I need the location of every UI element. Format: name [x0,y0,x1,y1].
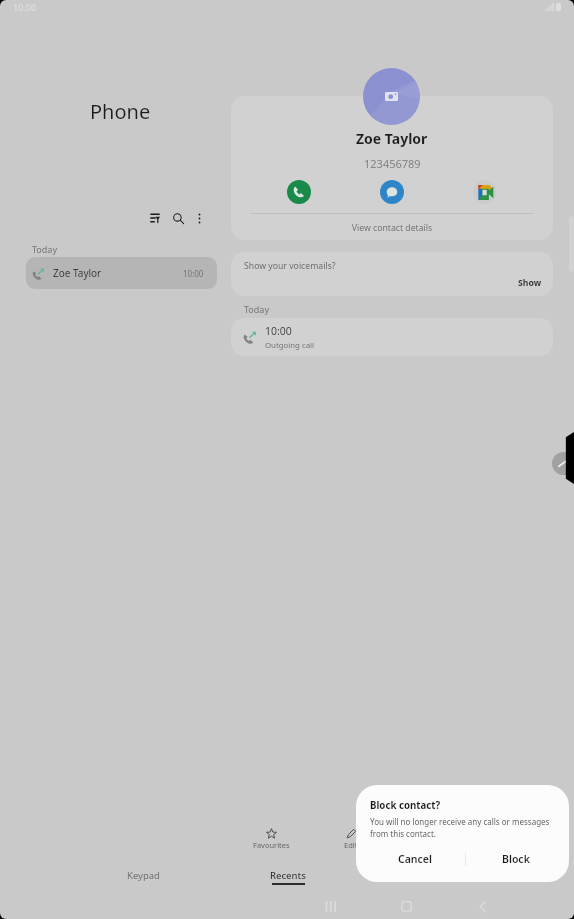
button[interactable]: Keypad [110,862,177,888]
staticText: You will no longer receive any calls or … [370,816,555,840]
button[interactable]: Search [167,207,189,229]
staticText: Zoe Taylor [356,129,428,148]
button[interactable]: Block [466,844,566,874]
button[interactable]: Video call [473,180,497,204]
staticText: Show your voicemails? [244,260,336,272]
button[interactable]: Favourites [231,822,311,856]
button[interactable]: Sort [144,207,166,229]
staticText: Favourites [253,840,290,850]
button[interactable]: Cancel [365,844,465,874]
button[interactable]: 10:00 [231,318,553,356]
button[interactable]: Edge panel [562,432,574,484]
staticText: 123456789 [364,156,421,171]
staticText: View contact details [231,222,553,234]
button[interactable]: Call [287,180,311,204]
staticText: Cancel [398,852,432,866]
staticText: Show [518,277,542,289]
staticText: Today [244,303,269,315]
staticText: Block [502,852,530,866]
staticText: 10.00 [13,1,37,13]
staticText: Recents [270,869,306,882]
staticText: 10:00 [183,268,204,279]
button[interactable]: Show your voicemails? [231,252,553,296]
button[interactable]: Message [380,180,404,204]
staticText: Block contact? [370,799,441,812]
staticText: 10:00 [265,324,292,338]
button[interactable]: Edit [311,822,391,856]
staticText: Phone [90,98,151,125]
staticText: Today [32,243,57,255]
button[interactable]: Block [391,822,472,856]
button[interactable]: More options [188,207,210,229]
staticText: Edit [344,840,358,850]
button[interactable]: Zoe Taylor [26,257,217,289]
staticText: Keypad [127,869,160,882]
staticText: Outgoing call [265,340,315,351]
button[interactable]: Recents [254,862,321,888]
button[interactable]: More [472,822,553,856]
staticText: Zoe Taylor [53,266,102,280]
